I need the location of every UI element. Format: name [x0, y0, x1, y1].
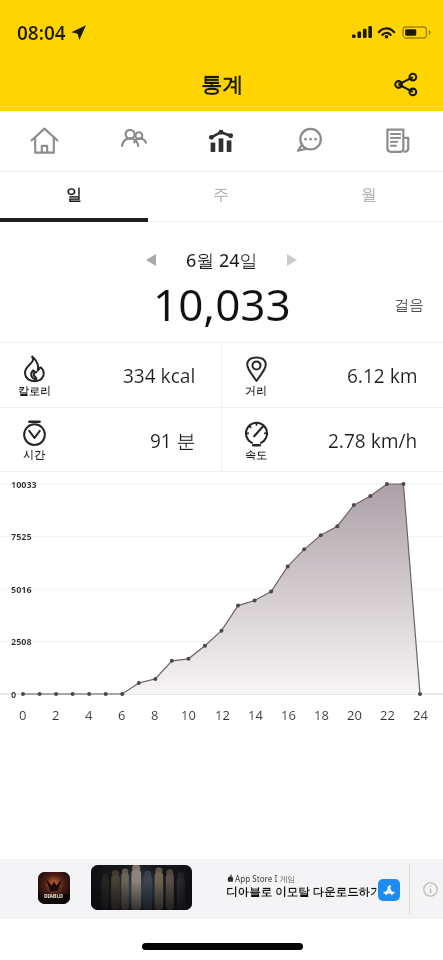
staticText: 걸음 [394, 296, 424, 315]
button[interactable]: Chat [265, 111, 354, 172]
button[interactable]: Next day [274, 242, 310, 278]
staticText: 주 [213, 185, 229, 205]
staticText: 월 [361, 185, 377, 205]
staticText: 10,033 [153, 274, 291, 334]
button[interactable]: Statistics [176, 111, 265, 172]
staticText: 12 [215, 706, 230, 724]
staticText: 6월 24일 [186, 248, 258, 273]
button[interactable]: 칼로리 [0, 343, 221, 407]
staticText: 일 [66, 185, 82, 205]
staticText: 16 [281, 706, 296, 724]
staticText: App Store I 게임 [235, 873, 296, 884]
staticText: 디아블로 이모탈 다운로드하기 [226, 884, 382, 900]
staticText: 거리 [245, 384, 267, 398]
staticText: 20 [347, 706, 362, 724]
button[interactable]: 거리 [222, 343, 443, 407]
staticText: 5016 [11, 583, 32, 595]
staticText: 8 [151, 706, 159, 724]
staticText: 통계 [201, 72, 243, 98]
staticText: 2 [52, 706, 60, 724]
button[interactable]: Ad info [420, 879, 440, 899]
button[interactable]: 주 [147, 172, 295, 222]
staticText: 10 [181, 706, 196, 724]
button[interactable]: Friends [88, 111, 176, 172]
staticText: 칼로리 [18, 384, 51, 398]
button[interactable]: 속도 [222, 408, 443, 471]
staticText: 18 [314, 706, 329, 724]
staticText: 91 분 [150, 428, 196, 454]
button[interactable]: 시간 [0, 408, 221, 471]
button[interactable]: DIABLO [0, 859, 443, 919]
button[interactable]: Previous day [133, 242, 169, 278]
staticText: 2508 [11, 635, 32, 647]
staticText: 4 [85, 706, 93, 724]
staticText: 0 [19, 706, 27, 724]
button[interactable]: News [354, 111, 443, 172]
staticText: 7525 [11, 530, 32, 542]
staticText: 334 kcal [123, 363, 196, 389]
staticText: DIABLO [44, 893, 64, 900]
button[interactable]: 월 [295, 172, 443, 222]
staticText: 24 [413, 706, 428, 724]
button[interactable]: 일 [0, 172, 147, 222]
staticText: 시간 [23, 448, 45, 462]
staticText: 속도 [245, 448, 267, 462]
staticText: 2.78 km/h [328, 428, 418, 454]
button[interactable]: Home [0, 111, 88, 172]
staticText: 6.12 km [347, 363, 418, 389]
button[interactable]: Share [383, 62, 427, 106]
staticText: 22 [380, 706, 395, 724]
staticText: 08:04 [17, 20, 66, 46]
button[interactable]: Open App Store [378, 879, 400, 901]
staticText: 0 [11, 688, 17, 700]
staticText: 10033 [11, 478, 37, 490]
staticText: 6 [118, 706, 126, 724]
staticText: 14 [248, 706, 263, 724]
